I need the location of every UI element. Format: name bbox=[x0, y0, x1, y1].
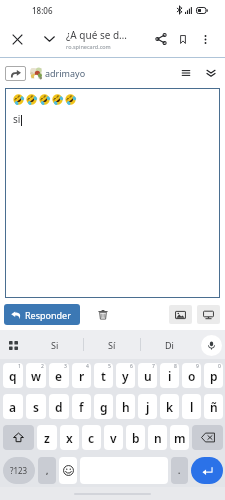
button[interactable]: x bbox=[60, 425, 79, 450]
button[interactable]: e bbox=[49, 363, 69, 388]
staticText: ¿A qué se d… bbox=[66, 28, 127, 42]
button[interactable]: z bbox=[37, 425, 57, 450]
staticText: l bbox=[190, 399, 194, 415]
staticText: Si bbox=[51, 339, 59, 351]
button[interactable]: t bbox=[94, 363, 113, 388]
staticText: o bbox=[188, 368, 196, 384]
staticText: 7 bbox=[152, 363, 155, 370]
staticText: 4 bbox=[86, 363, 89, 370]
staticText: g bbox=[100, 399, 108, 415]
button[interactable]: Expand bbox=[201, 63, 221, 83]
staticText: v bbox=[110, 430, 117, 446]
staticText: p bbox=[210, 368, 218, 384]
staticText: ro.spinecard.com bbox=[66, 43, 111, 50]
staticText: si bbox=[13, 112, 21, 126]
button[interactable]: f bbox=[72, 394, 91, 419]
button[interactable]: Insert image bbox=[169, 305, 192, 324]
staticText: a bbox=[9, 399, 17, 415]
button[interactable]: Delete bbox=[92, 304, 113, 325]
button[interactable]: Reply bbox=[5, 66, 26, 81]
button[interactable]: Share bbox=[149, 27, 173, 51]
staticText: u bbox=[144, 368, 152, 384]
button[interactable]: v bbox=[104, 425, 123, 450]
button[interactable]: r bbox=[72, 363, 91, 388]
button[interactable]: y bbox=[116, 363, 135, 388]
button[interactable]: Collapse bbox=[34, 24, 64, 54]
button[interactable]: h bbox=[116, 394, 135, 419]
staticText: 5 bbox=[108, 363, 111, 370]
button[interactable]: . bbox=[171, 457, 188, 484]
button[interactable]: l bbox=[182, 394, 201, 419]
button[interactable]: g bbox=[94, 394, 113, 419]
staticText: r bbox=[79, 368, 85, 384]
button[interactable]: Sí bbox=[84, 330, 140, 359]
staticText: c bbox=[88, 430, 95, 446]
staticText: i bbox=[168, 368, 172, 384]
button[interactable]: s bbox=[26, 394, 46, 419]
staticText: Di bbox=[165, 339, 174, 351]
button[interactable]: , bbox=[38, 457, 56, 484]
staticText: s bbox=[33, 399, 39, 415]
staticText: z bbox=[44, 430, 50, 446]
button[interactable]: Desktop view bbox=[197, 305, 220, 324]
button[interactable]: j bbox=[138, 394, 157, 419]
staticText: d bbox=[55, 399, 63, 415]
button[interactable]: Menu bbox=[176, 63, 196, 83]
staticText: q bbox=[9, 368, 17, 384]
button[interactable]: Voice input bbox=[197, 331, 225, 359]
button[interactable]: a bbox=[3, 394, 23, 419]
button[interactable]: Close bbox=[0, 22, 34, 56]
button[interactable]: k bbox=[160, 394, 179, 419]
staticText: h bbox=[122, 399, 130, 415]
staticText: m bbox=[174, 430, 186, 446]
staticText: ñ bbox=[210, 399, 218, 415]
staticText: 3 bbox=[64, 363, 67, 370]
button[interactable]: Responder bbox=[4, 304, 80, 325]
staticText: b bbox=[132, 430, 140, 446]
staticText: 9 bbox=[196, 363, 199, 370]
button[interactable]: b bbox=[126, 425, 145, 450]
staticText: . bbox=[178, 465, 181, 476]
staticText: ?123 bbox=[10, 465, 28, 476]
staticText: 0 bbox=[218, 363, 221, 370]
button[interactable]: c bbox=[82, 425, 101, 450]
staticText: 1 bbox=[18, 363, 21, 370]
staticText: 18:06 bbox=[32, 5, 53, 16]
staticText: f bbox=[79, 399, 84, 415]
button[interactable]: Enter bbox=[191, 457, 223, 484]
staticText: x bbox=[66, 430, 73, 446]
staticText: 6 bbox=[130, 363, 133, 370]
staticText: Sí bbox=[108, 339, 116, 351]
staticText: j bbox=[146, 399, 150, 415]
button[interactable]: n bbox=[148, 425, 167, 450]
button[interactable]: ?123 bbox=[3, 457, 35, 484]
button[interactable]: Di bbox=[141, 330, 197, 359]
staticText: Responder bbox=[25, 309, 71, 321]
staticText: e bbox=[55, 368, 63, 384]
staticText: , bbox=[46, 465, 49, 476]
button[interactable]: o bbox=[182, 363, 201, 388]
button[interactable]: w bbox=[26, 363, 46, 388]
button[interactable]: d bbox=[49, 394, 69, 419]
staticText: 8 bbox=[174, 363, 177, 370]
button[interactable]: Emoji bbox=[59, 457, 77, 484]
button[interactable]: Shift bbox=[3, 425, 34, 450]
staticText: 2 bbox=[41, 363, 44, 370]
button[interactable]: Apps bbox=[0, 332, 26, 358]
button[interactable]: Backspace bbox=[192, 425, 223, 450]
button[interactable]: ñ bbox=[204, 394, 223, 419]
button[interactable]: More options bbox=[193, 27, 217, 51]
staticText: adrimayo bbox=[45, 67, 86, 79]
button[interactable]: m bbox=[170, 425, 189, 450]
button[interactable]: u bbox=[138, 363, 157, 388]
button[interactable]: p bbox=[204, 363, 223, 388]
staticText: w bbox=[31, 368, 41, 384]
button[interactable]: Si bbox=[26, 330, 83, 359]
button[interactable]: Bookmark bbox=[173, 29, 193, 49]
staticText: y bbox=[122, 368, 129, 384]
button[interactable]: i bbox=[160, 363, 179, 388]
staticText: k bbox=[166, 399, 174, 415]
button[interactable]: q bbox=[3, 363, 23, 388]
staticText: n bbox=[154, 430, 162, 446]
